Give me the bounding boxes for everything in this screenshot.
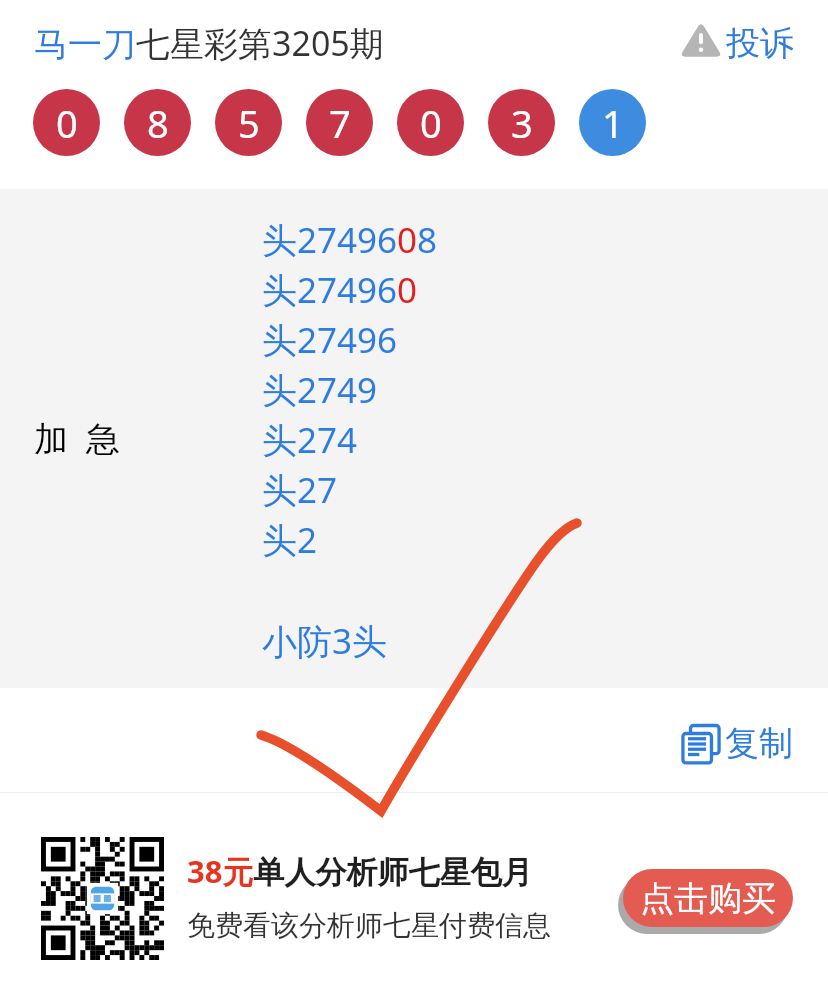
button[interactable]: 马一刀七星彩第3205期 <box>34 20 384 66</box>
staticText: 0 <box>420 97 442 149</box>
other: 复制 <box>680 723 722 765</box>
button[interactable]: 小防3头 <box>262 617 388 665</box>
staticText: 点击购买 <box>640 877 776 920</box>
button[interactable]: 8 <box>124 89 191 156</box>
staticText: 马一刀七星彩第3205期 <box>34 20 384 66</box>
staticText: 头2 <box>262 516 318 564</box>
staticText: 头274 <box>262 416 358 464</box>
button[interactable]: 5 <box>215 89 282 156</box>
button[interactable]: 头2749 <box>262 366 378 416</box>
button[interactable]: 扫码二维码 <box>41 837 164 960</box>
staticText: 7 <box>329 97 351 149</box>
button[interactable]: 头274 <box>262 416 358 466</box>
staticText: 免费看该分析师七星付费信息 <box>187 908 551 943</box>
button[interactable]: 头274960 <box>262 266 418 316</box>
other: 投诉 <box>679 17 723 58</box>
button[interactable]: 0 <box>33 89 100 156</box>
button[interactable]: 7 <box>306 89 373 156</box>
staticText: 3 <box>511 97 533 149</box>
button[interactable]: 1 <box>579 89 646 156</box>
button[interactable]: 头27 <box>262 466 338 516</box>
button[interactable]: 3 <box>488 89 555 156</box>
staticText: 投诉 <box>726 22 794 65</box>
staticText: 加 急 <box>34 415 120 461</box>
staticText: 5 <box>238 97 260 149</box>
button[interactable]: 头27496 <box>262 316 398 366</box>
button[interactable]: 头2 <box>262 516 318 566</box>
staticText: 38元单人分析师七星包月 <box>187 850 533 892</box>
staticText: 头27496 <box>262 316 398 364</box>
staticText: 8 <box>147 97 169 149</box>
button[interactable]: 投诉 <box>679 16 791 59</box>
button[interactable]: 点击购买 <box>623 869 793 927</box>
staticText: 头274960 <box>262 266 418 314</box>
staticText: 1 <box>602 97 624 149</box>
staticText: 头2749 <box>262 366 378 414</box>
button[interactable]: 头2749608 <box>262 216 438 266</box>
button[interactable]: 复制 <box>680 722 793 765</box>
button[interactable]: 38元单人分析师七星包月 <box>187 850 551 943</box>
button[interactable]: 0 <box>397 89 464 156</box>
staticText: 头27 <box>262 466 338 514</box>
staticText: 复制 <box>725 722 793 765</box>
staticText: 头2749608 <box>262 216 438 264</box>
staticText: 0 <box>56 97 78 149</box>
